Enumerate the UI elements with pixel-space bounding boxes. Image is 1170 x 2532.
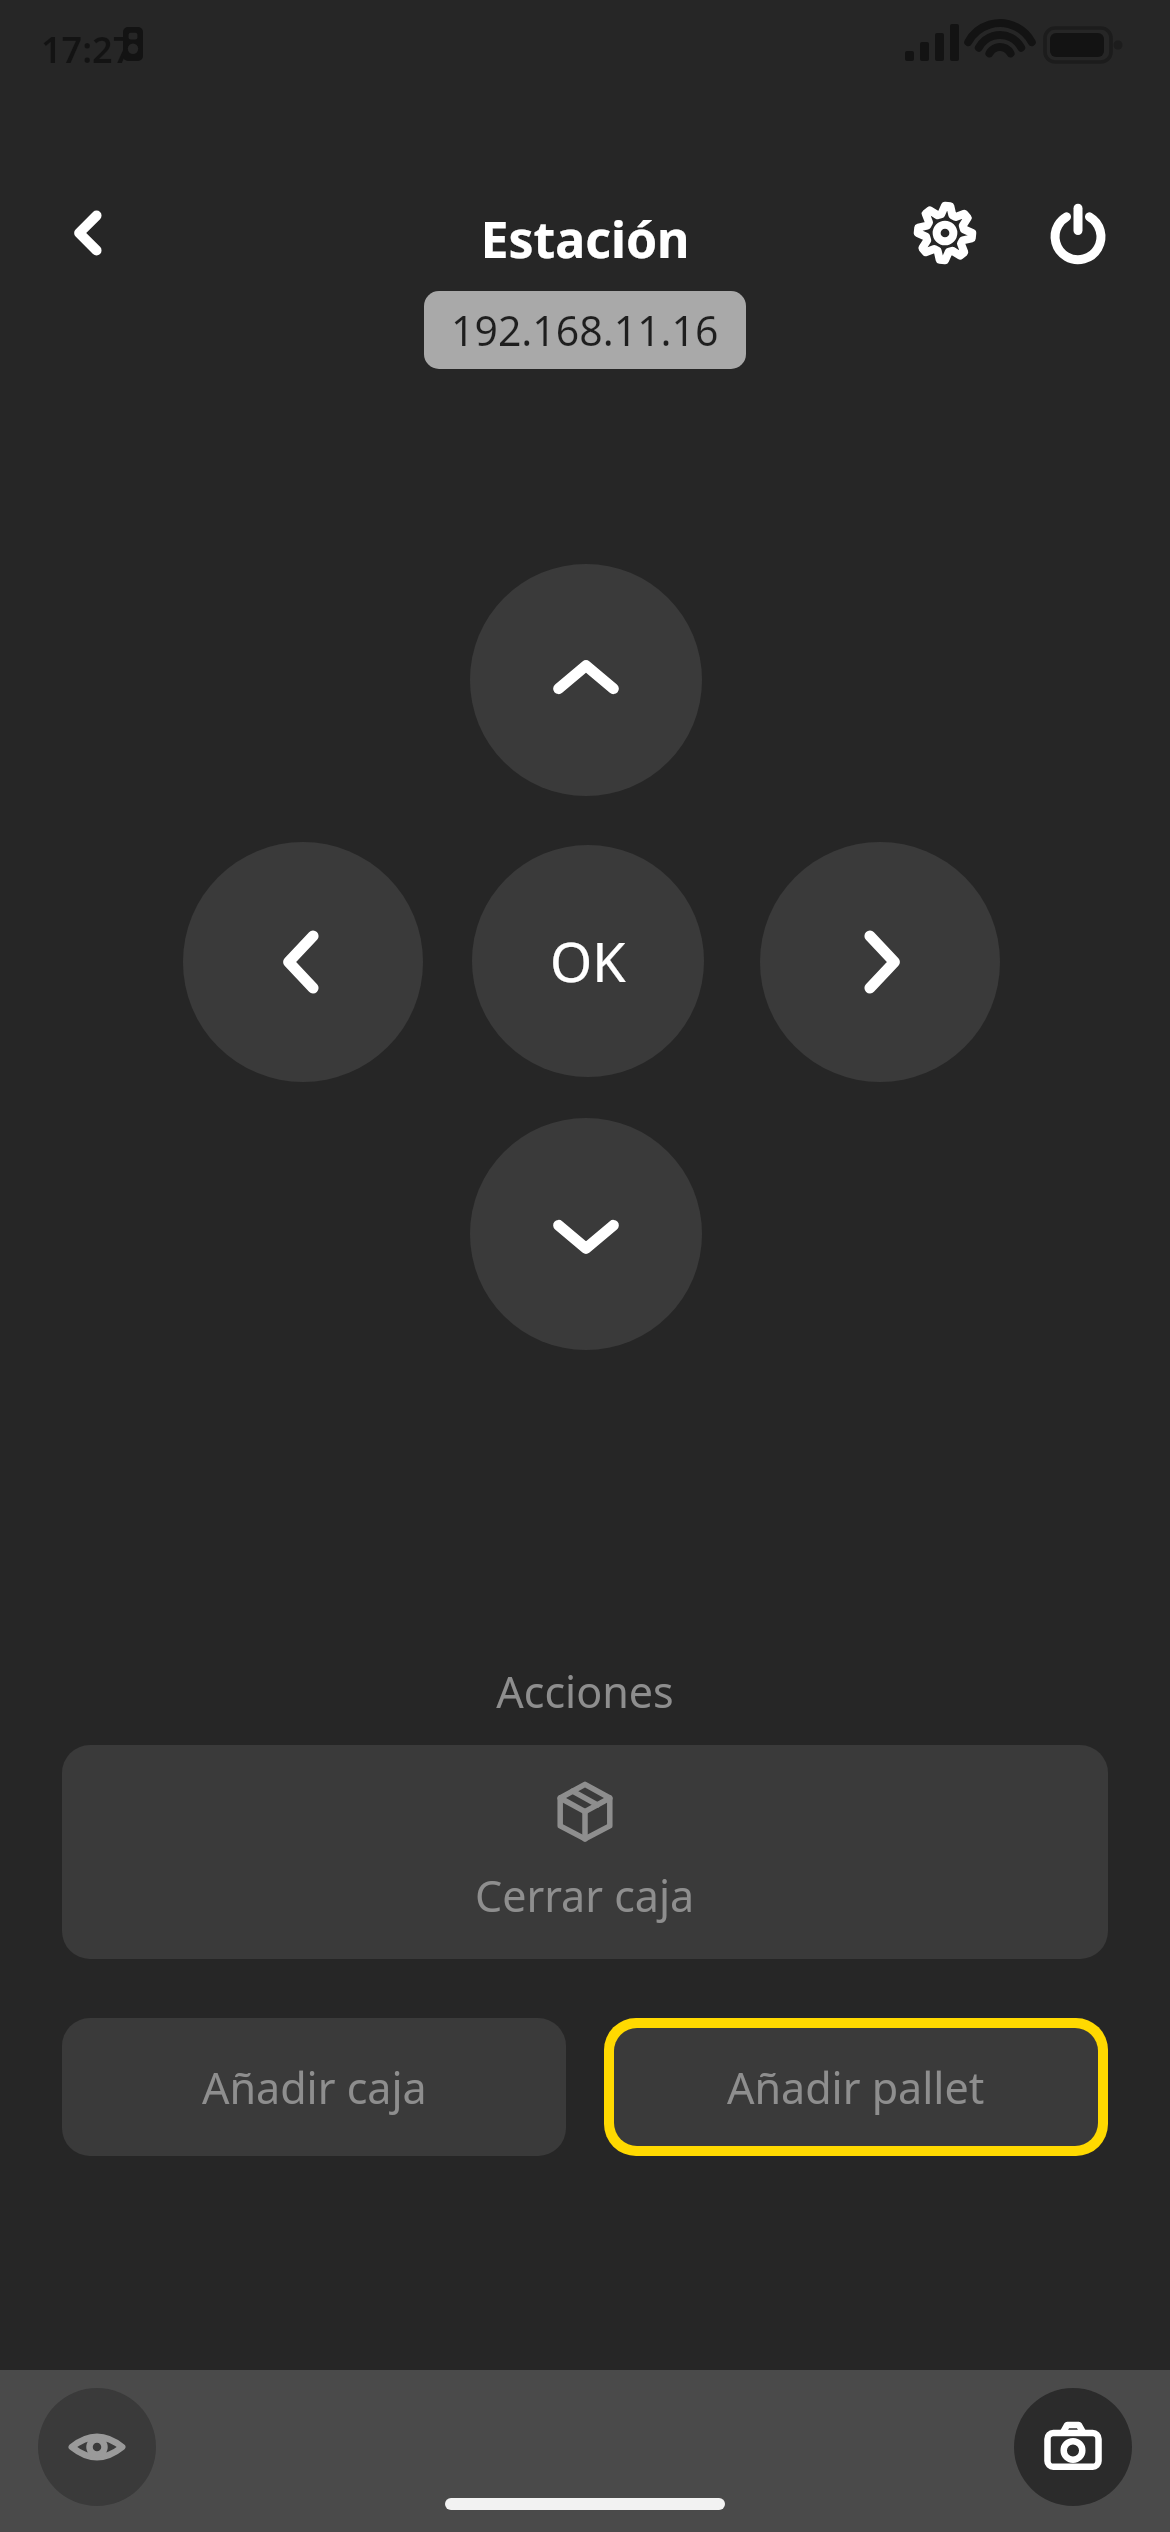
button[interactable]: Back [34,178,144,288]
button[interactable]: Camera [1014,2388,1132,2506]
button[interactable]: Right [760,842,1000,1082]
button[interactable]: Left [183,842,423,1082]
button[interactable]: Añadir caja [62,2018,566,2156]
button[interactable]: OK [472,845,704,1077]
button[interactable]: Up [470,564,702,796]
staticText: Acciones [0,1662,1170,1721]
staticText: OK [550,924,626,998]
staticText: 192.168.11.16 [451,302,719,358]
button[interactable]: Añadir pallet [614,2028,1098,2146]
button[interactable]: Cerrar caja [62,1745,1108,1959]
button[interactable]: Down [470,1118,702,1350]
button[interactable]: Preview [38,2388,156,2506]
staticText: Cerrar caja [475,1866,695,1925]
staticText: 17:27 [41,25,134,74]
button[interactable]: Settings [890,178,1000,288]
staticText: Añadir pallet [727,2058,985,2117]
button[interactable]: 192.168.11.16 [451,302,719,358]
staticText: Añadir caja [202,2058,427,2117]
staticText: Estación [0,205,1170,273]
button[interactable]: Power [1023,178,1133,288]
